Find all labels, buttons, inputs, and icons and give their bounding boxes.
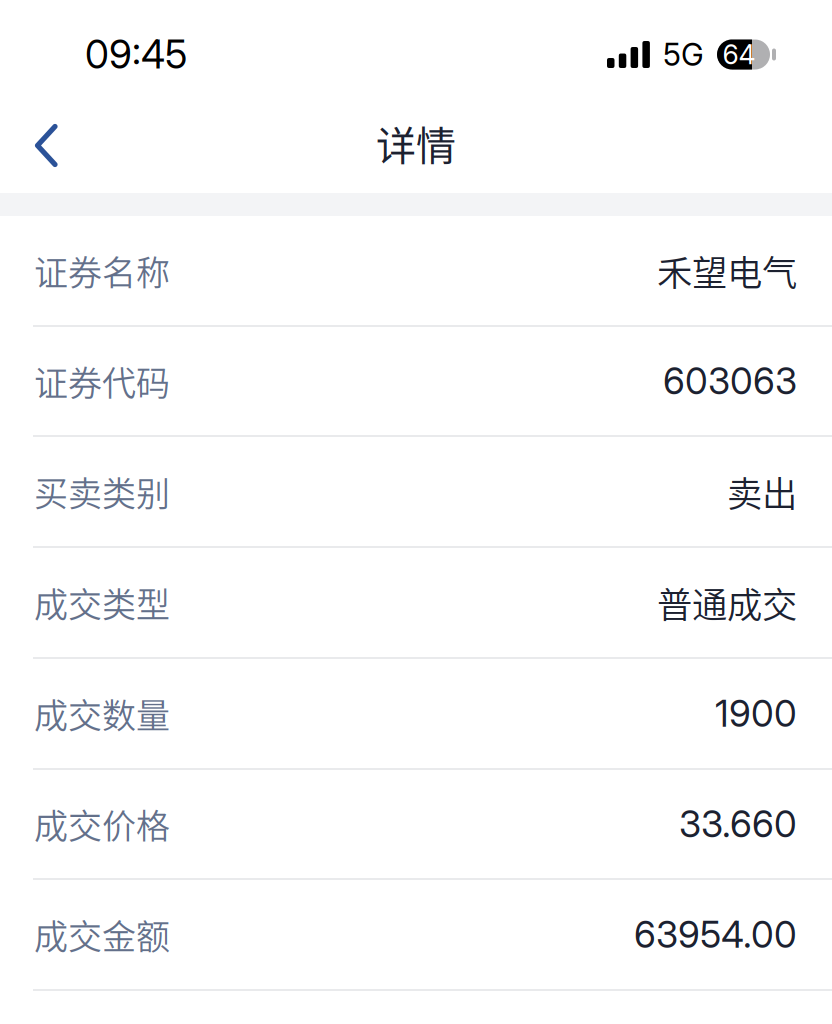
staticText: 5G [663, 36, 704, 73]
staticText: 买卖类别 [34, 467, 170, 516]
button[interactable]: 成交价格 [0, 770, 832, 880]
button[interactable]: 成交数量 [0, 659, 832, 770]
staticText: 33.660 [679, 802, 797, 846]
staticText: 603063 [663, 359, 797, 403]
staticText: 证券代码 [34, 356, 170, 406]
staticText: 成交类型 [34, 578, 170, 627]
staticText: 63954.00 [634, 912, 797, 957]
button[interactable]: 买卖类别 [0, 437, 832, 548]
button[interactable]: 证券代码 [0, 327, 832, 437]
staticText: 禾望电气 [657, 245, 797, 296]
staticText: 普通成交 [657, 577, 797, 628]
staticText: 成交价格 [34, 799, 170, 849]
staticText: 成交金额 [34, 910, 170, 959]
staticText: 1900 [715, 691, 797, 736]
staticText: 卖出 [727, 466, 797, 517]
staticText: 64 [722, 38, 755, 71]
button[interactable]: 成交类型 [0, 548, 832, 659]
staticText: 09:45 [85, 31, 187, 78]
staticText: 证券名称 [34, 246, 170, 295]
button[interactable]: Back [12, 109, 80, 181]
staticText: 成交数量 [34, 689, 170, 738]
button[interactable]: 成交金额 [0, 880, 832, 991]
staticText: 详情 [376, 114, 456, 172]
button[interactable]: 证券名称 [0, 216, 832, 327]
